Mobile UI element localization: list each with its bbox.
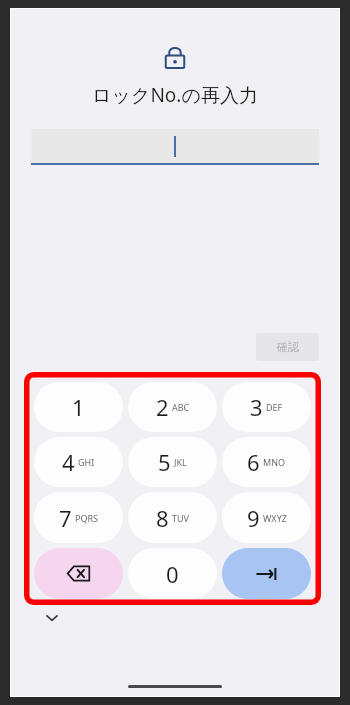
button[interactable]: キーボードを閉じる xyxy=(41,607,63,629)
button[interactable]: 9 xyxy=(222,492,311,543)
staticText: GHI xyxy=(78,456,95,468)
staticText: MNO xyxy=(263,456,286,468)
staticText: PQRS xyxy=(75,512,99,524)
staticText: 6 xyxy=(247,447,260,477)
staticText: ロックNo.の再入力 xyxy=(11,82,339,108)
button[interactable]: 2 xyxy=(128,382,217,432)
staticText: 7 xyxy=(59,503,72,533)
button[interactable]: 1 xyxy=(34,382,123,432)
staticText: TUV xyxy=(172,512,189,524)
staticText: 確認 xyxy=(277,340,299,354)
staticText: WXYZ xyxy=(263,512,287,524)
button[interactable]: 7 xyxy=(34,492,123,543)
button[interactable]: 削除 xyxy=(34,548,123,599)
button[interactable]: 8 xyxy=(128,492,217,543)
staticText: 8 xyxy=(156,503,169,533)
staticText: JKL xyxy=(174,456,187,468)
staticText: 0 xyxy=(166,559,179,589)
staticText: 2 xyxy=(156,392,169,422)
staticText: 5 xyxy=(158,447,171,477)
button[interactable]: 3 xyxy=(222,382,311,432)
staticText: 9 xyxy=(247,503,260,533)
button[interactable] xyxy=(31,129,319,165)
button[interactable]: 6 xyxy=(222,437,311,487)
button[interactable]: 次へ xyxy=(222,548,311,599)
staticText: ABC xyxy=(172,401,190,413)
button[interactable]: 5 xyxy=(128,437,217,487)
button[interactable]: 確認 xyxy=(256,333,319,361)
staticText: 3 xyxy=(250,392,263,422)
button[interactable]: 0 xyxy=(128,548,217,599)
staticText: DEF xyxy=(266,401,283,413)
staticText: 4 xyxy=(62,447,75,477)
staticText: 1 xyxy=(72,392,85,422)
button[interactable]: 4 xyxy=(34,437,123,487)
